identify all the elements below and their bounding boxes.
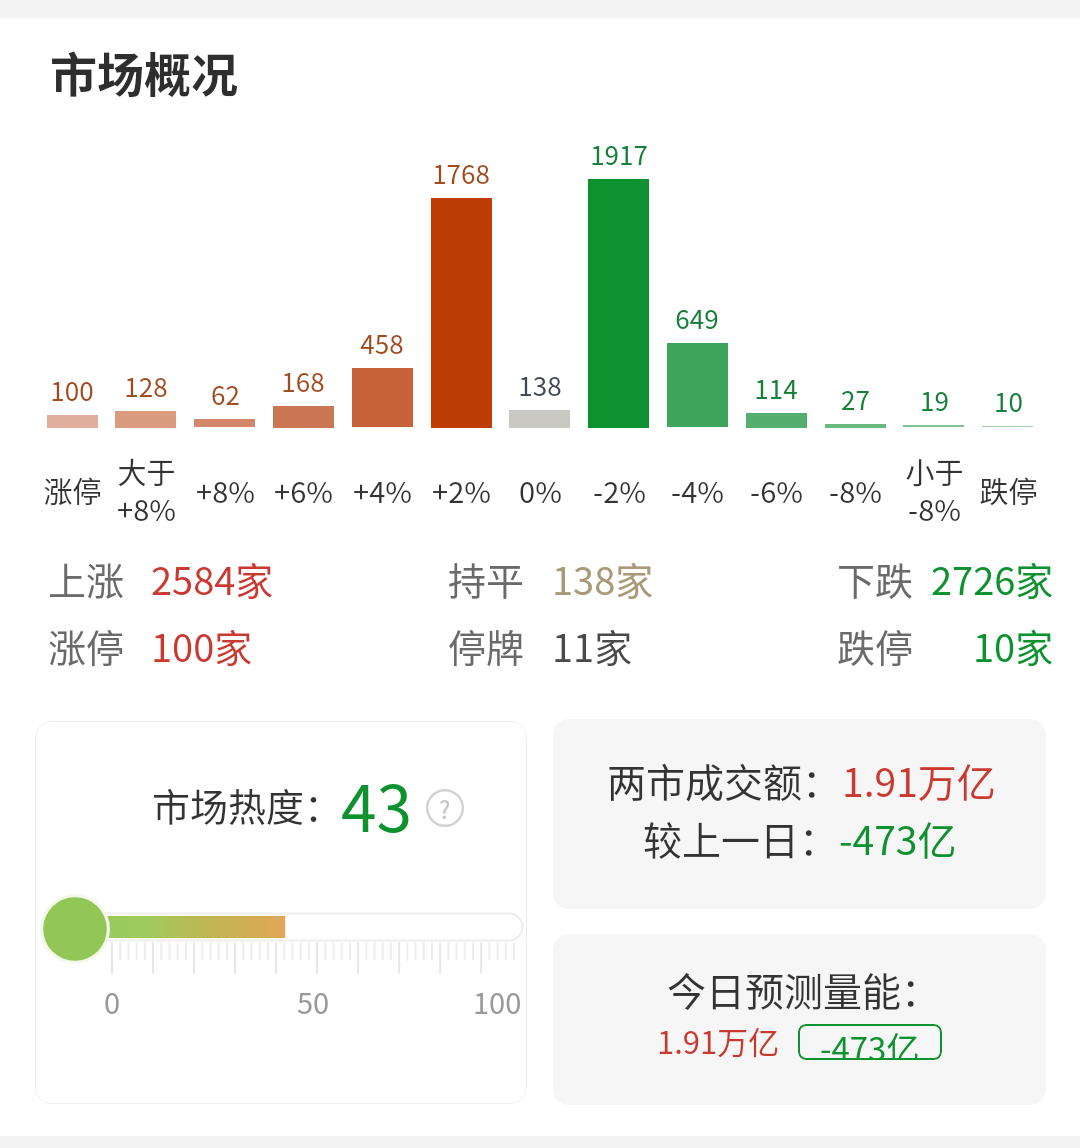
button[interactable]: 帮助说明: [426, 789, 464, 827]
staticText: 涨停: [48, 618, 125, 673]
staticText: +4%: [353, 469, 412, 511]
staticText: 1.91万亿: [842, 752, 996, 808]
staticText: 100家: [151, 618, 253, 673]
staticText: 11家: [552, 618, 633, 673]
staticText: -473亿: [839, 810, 957, 866]
staticText: 27: [841, 380, 870, 418]
staticText: +8%: [196, 469, 255, 511]
staticText: 50: [297, 980, 330, 1022]
staticText: 10家: [973, 618, 1054, 673]
staticText: 1917: [590, 135, 648, 173]
staticText: 1768: [432, 154, 490, 192]
button[interactable]: 今日预测量能：: [553, 934, 1046, 1105]
staticText: -8%: [829, 469, 882, 511]
staticText: 市场概况: [50, 37, 238, 105]
staticText: 1.91万亿: [657, 1018, 780, 1063]
staticText: -2%: [593, 469, 646, 511]
staticText: 0%: [519, 469, 562, 511]
staticText: 两市成交额：: [607, 752, 842, 808]
staticText: 458: [360, 324, 404, 362]
staticText: 跌停: [979, 469, 1038, 511]
button[interactable]: 两市成交额：: [553, 719, 1046, 909]
staticText: 649: [675, 299, 719, 337]
staticText: +6%: [274, 469, 333, 511]
staticText: 大于: [117, 450, 176, 492]
staticText: 168: [281, 362, 325, 400]
staticText: +2%: [432, 469, 491, 511]
button[interactable]: -473亿: [798, 1024, 942, 1060]
staticText: 今日预测量能：: [667, 961, 941, 1017]
staticText: 128: [124, 367, 168, 405]
staticText: ?: [439, 791, 451, 826]
staticText: 0: [104, 980, 121, 1022]
staticText: 10: [994, 382, 1023, 420]
staticText: 138家: [552, 551, 654, 606]
staticText: 跌停: [837, 618, 914, 673]
staticText: 19: [920, 381, 949, 419]
staticText: 较上一日：: [643, 810, 839, 866]
staticText: -4%: [671, 469, 724, 511]
staticText: 持平: [448, 551, 525, 606]
staticText: 停牌: [448, 618, 525, 673]
staticText: 100: [50, 371, 94, 409]
staticText: 2584家: [151, 551, 274, 606]
staticText: 市场热度：: [152, 777, 343, 832]
staticText: 上涨: [48, 551, 125, 606]
staticText: 涨停: [43, 469, 102, 511]
staticText: 138: [518, 366, 562, 404]
staticText: -6%: [750, 469, 803, 511]
staticText: 114: [754, 369, 798, 407]
staticText: +8%: [117, 487, 176, 529]
staticText: 43: [341, 758, 413, 851]
staticText: 2726家: [931, 551, 1054, 606]
staticText: 100: [473, 980, 522, 1022]
staticText: -8%: [908, 487, 961, 529]
staticText: -473亿: [820, 1024, 920, 1059]
staticText: 下跌: [837, 551, 914, 606]
staticText: 小于: [905, 450, 964, 492]
button[interactable]: 市场热度：: [35, 721, 527, 1104]
staticText: 62: [211, 375, 240, 413]
